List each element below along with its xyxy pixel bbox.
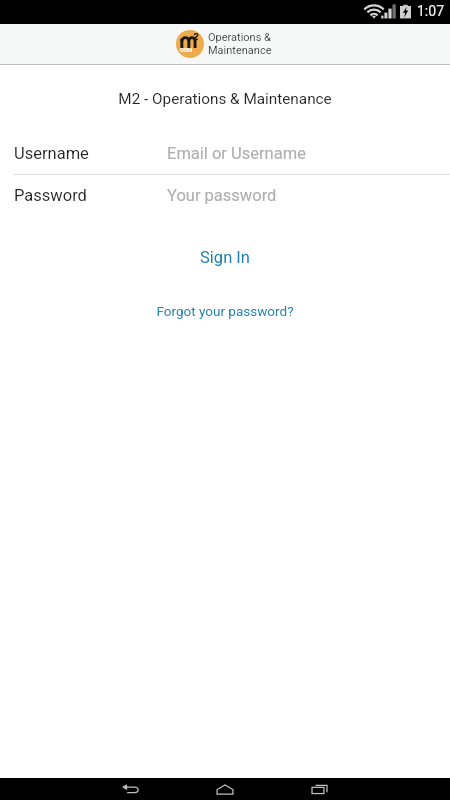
- button[interactable]: Recent apps: [295, 778, 343, 800]
- button[interactable]: Home: [201, 778, 249, 800]
- staticText: OSM: [180, 47, 192, 53]
- button[interactable]: Back: [106, 778, 154, 800]
- staticText: 1:07: [417, 3, 444, 19]
- staticText: Username: [14, 144, 167, 163]
- button[interactable]: Sign In: [0, 243, 450, 272]
- button[interactable]: OSM: [176, 30, 272, 58]
- staticText: Email or Username: [167, 144, 306, 163]
- staticText: Operations &: [208, 31, 271, 44]
- staticText: Forgot your password?: [156, 303, 294, 319]
- staticText: M2 - Operations & Maintenance: [0, 90, 450, 108]
- staticText: Password: [14, 186, 167, 205]
- staticText: Sign In: [200, 248, 250, 267]
- staticText: Your password: [167, 186, 277, 205]
- staticText: Maintenance: [208, 44, 272, 57]
- button[interactable]: Forgot your password?: [0, 298, 450, 324]
